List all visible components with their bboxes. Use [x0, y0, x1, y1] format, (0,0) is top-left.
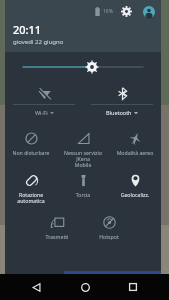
- button[interactable]: Recents: [120, 274, 146, 300]
- button[interactable]: Modalità aereo: [109, 126, 161, 168]
- button[interactable]: Wi-Fi: [5, 82, 83, 126]
- staticText: Non disturbare: [6, 149, 56, 156]
- staticText: 16%: [103, 8, 113, 15]
- staticText: Bluetooth: [106, 109, 132, 116]
- staticText: 20:11: [13, 22, 42, 37]
- button[interactable]: Hotspot: [83, 210, 135, 252]
- button[interactable]: Nessun servizio JKena Mobile: [57, 126, 109, 168]
- button[interactable]: Torcia: [57, 168, 109, 210]
- staticText: Modalità aereo: [110, 149, 160, 156]
- staticText: giovedì 22 giugno: [13, 38, 64, 46]
- button[interactable]: Settings: [120, 5, 133, 18]
- button[interactable]: Rotazione automatica: [5, 168, 57, 210]
- button[interactable]: User: [142, 5, 155, 18]
- staticText: Nessun servizio JKena Mobile: [58, 149, 108, 168]
- staticText: Hotspot: [84, 233, 134, 240]
- staticText: Rotazione automatica: [6, 191, 56, 205]
- staticText: Trasmetti: [32, 233, 82, 240]
- staticText: Wi-Fi: [35, 109, 48, 116]
- button[interactable]: Trasmetti: [31, 210, 83, 252]
- button[interactable]: Non disturbare: [5, 126, 57, 168]
- button[interactable]: Geolocalizz.: [109, 168, 161, 210]
- staticText: Geolocalizz.: [110, 191, 160, 198]
- button[interactable]: Home: [72, 274, 98, 300]
- staticText: Torcia: [58, 191, 108, 198]
- button[interactable]: Brightness: [23, 58, 143, 76]
- button[interactable]: Bluetooth: [83, 82, 161, 126]
- button[interactable]: Back: [23, 274, 49, 300]
